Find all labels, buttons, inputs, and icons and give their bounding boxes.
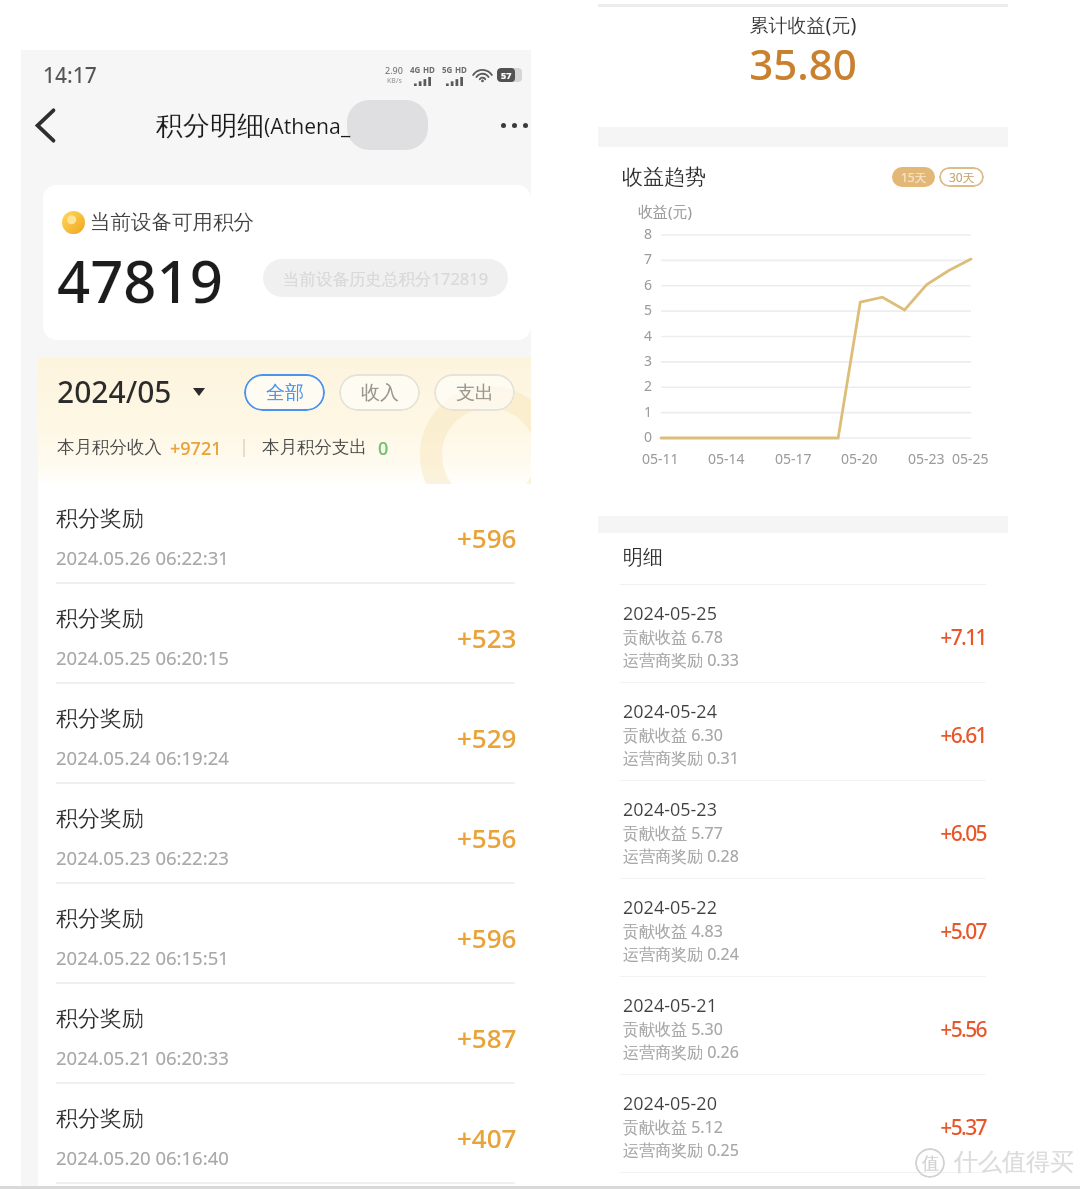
- button[interactable]: 30天: [939, 167, 984, 187]
- staticText: 15天: [901, 169, 927, 185]
- staticText: +5.37: [886, 1113, 986, 1142]
- staticText: 积分奖励: [56, 905, 144, 933]
- staticText: +5.07: [886, 917, 986, 946]
- staticText: 贡献收益 6.30: [623, 724, 723, 746]
- button[interactable]: 15天: [892, 167, 935, 187]
- staticText: +5.56: [886, 1015, 986, 1044]
- staticText: 运营商奖励 0.28: [623, 845, 739, 867]
- staticText: +587: [457, 1020, 517, 1055]
- button[interactable]: 2024-05-25: [598, 585, 1008, 683]
- staticText: 积分奖励: [56, 1005, 144, 1033]
- staticText: 05-14: [708, 449, 745, 468]
- staticText: 本月积分支出: [262, 436, 367, 458]
- staticText: 1: [644, 402, 653, 421]
- button[interactable]: 积分奖励: [38, 984, 531, 1084]
- staticText: HD: [423, 64, 435, 75]
- staticText: 5G: [442, 64, 453, 75]
- staticText: 积分明细: [156, 109, 264, 143]
- button[interactable]: 全部: [244, 374, 325, 411]
- staticText: +556: [457, 820, 517, 855]
- staticText: 2024.05.24 06:19:24: [56, 745, 229, 770]
- staticText: 收益趋势: [622, 164, 706, 190]
- button[interactable]: More options: [489, 100, 539, 150]
- staticText: 2024.05.20 06:16:40: [56, 1145, 229, 1170]
- staticText: 57: [501, 69, 512, 81]
- staticText: 支出: [456, 381, 494, 405]
- staticText: 运营商奖励 0.24: [623, 943, 739, 965]
- staticText: 收益(元): [638, 201, 693, 221]
- staticText: 7: [644, 249, 653, 268]
- staticText: 05-17: [775, 449, 812, 468]
- staticText: +529: [457, 720, 517, 755]
- staticText: 0: [378, 436, 389, 461]
- button[interactable]: 积分奖励: [38, 684, 531, 784]
- staticText: 4G: [410, 64, 421, 75]
- staticText: 当前设备可用积分: [90, 209, 254, 235]
- button[interactable]: 积分奖励: [38, 484, 531, 584]
- staticText: 05-11: [642, 449, 679, 468]
- staticText: +407: [457, 1120, 517, 1155]
- staticText: 2024-05-21: [623, 993, 717, 1018]
- staticText: 积分奖励: [56, 705, 144, 733]
- staticText: 47819: [57, 241, 223, 320]
- staticText: 05-23: [908, 449, 945, 468]
- staticText: 全部: [266, 381, 304, 405]
- staticText: 值: [922, 1153, 939, 1174]
- staticText: 积分奖励: [56, 1105, 144, 1133]
- staticText: 贡献收益 4.83: [623, 920, 723, 942]
- button[interactable]: 2024-05-23: [598, 781, 1008, 879]
- staticText: 3: [644, 351, 653, 370]
- staticText: 运营商奖励 0.25: [623, 1139, 739, 1161]
- button[interactable]: 2024-05-24: [598, 683, 1008, 781]
- button[interactable]: Back: [21, 100, 73, 150]
- staticText: KB/s: [387, 76, 402, 86]
- button[interactable]: 2024-05-22: [598, 879, 1008, 977]
- staticText: 当前设备历史总积分172819: [283, 267, 489, 290]
- staticText: 2024.05.26 06:22:31: [56, 545, 229, 570]
- staticText: 2024/05: [57, 371, 172, 412]
- button[interactable]: 2024-05-21: [598, 977, 1008, 1075]
- staticText: 2024.05.22 06:15:51: [56, 945, 229, 970]
- staticText: 2024-05-22: [623, 895, 717, 920]
- staticText: 2024.05.23 06:22:23: [56, 845, 229, 870]
- button[interactable]: 支出: [434, 374, 515, 411]
- button[interactable]: 积分奖励: [38, 1084, 531, 1184]
- staticText: 运营商奖励 0.33: [623, 649, 739, 671]
- staticText: 2024-05-24: [623, 699, 717, 724]
- staticText: +6.61: [886, 721, 986, 750]
- staticText: (Athena_: [264, 112, 351, 141]
- staticText: 贡献收益 6.78: [623, 626, 723, 648]
- staticText: 明细: [623, 545, 663, 570]
- staticText: 2024.05.25 06:20:15: [56, 645, 229, 670]
- staticText: 累计收益(元): [598, 12, 1008, 38]
- staticText: 积分奖励: [56, 605, 144, 633]
- staticText: 运营商奖励 0.26: [623, 1041, 739, 1063]
- staticText: 05-20: [841, 449, 878, 468]
- staticText: 0: [644, 427, 653, 446]
- staticText: +523: [457, 620, 517, 655]
- staticText: 什么值得买: [954, 1147, 1074, 1177]
- staticText: 30天: [949, 169, 975, 185]
- button[interactable]: 积分奖励: [38, 884, 531, 984]
- staticText: 积分奖励: [56, 505, 144, 533]
- staticText: 5: [644, 300, 653, 319]
- button[interactable]: 积分奖励: [38, 584, 531, 684]
- staticText: 05-25: [952, 449, 989, 468]
- staticText: 6: [644, 275, 653, 294]
- staticText: 贡献收益 5.30: [623, 1018, 723, 1040]
- staticText: 14:17: [43, 61, 97, 90]
- button[interactable]: 2024-05-20: [598, 1075, 1008, 1173]
- button[interactable]: 积分奖励: [38, 784, 531, 884]
- staticText: +596: [457, 520, 517, 555]
- staticText: 35.80: [598, 35, 1008, 92]
- staticText: 积分奖励: [56, 805, 144, 833]
- staticText: 运营商奖励 0.31: [623, 747, 739, 769]
- staticText: 2024-05-25: [623, 601, 717, 626]
- staticText: 8: [644, 224, 653, 243]
- staticText: 2: [644, 376, 653, 395]
- staticText: 2024.05.21 06:20:33: [56, 1045, 229, 1070]
- staticText: 2024-05-23: [623, 797, 717, 822]
- staticText: 贡献收益 5.12: [623, 1116, 723, 1138]
- button[interactable]: 收入: [339, 374, 420, 411]
- staticText: 收入: [361, 381, 399, 405]
